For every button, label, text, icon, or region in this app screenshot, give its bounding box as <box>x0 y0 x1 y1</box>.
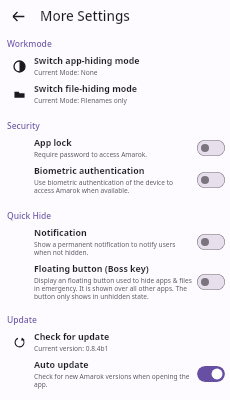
staticText: Use biometric authentication of the devi… <box>34 178 193 195</box>
button[interactable]: Biometric authentication <box>0 162 230 198</box>
staticText: Quick Hide <box>7 210 52 222</box>
button[interactable]: Off <box>197 234 225 250</box>
button[interactable]: Off <box>197 274 225 290</box>
staticText: Switch file-hiding mode <box>34 83 138 95</box>
staticText: Check for new Amarok versions when openi… <box>34 372 193 389</box>
button[interactable]: Back <box>6 4 30 28</box>
staticText: App lock <box>34 137 72 149</box>
staticText: Auto update <box>34 359 89 371</box>
button[interactable]: App lock <box>0 134 230 162</box>
button[interactable]: Notification <box>0 224 230 260</box>
button[interactable]: Switch app-hiding mode <box>0 52 230 80</box>
staticText: Require password to access Amarok. <box>34 150 148 159</box>
staticText: Current Mode: None <box>34 68 98 77</box>
staticText: Biometric authentication <box>34 165 145 177</box>
staticText: Show a permanent notification to notify … <box>34 240 193 257</box>
staticText: Switch app-hiding mode <box>34 55 140 67</box>
button[interactable]: On <box>197 366 225 382</box>
button[interactable]: Check for update <box>0 328 230 356</box>
staticText: Current Mode: Filenames only <box>34 96 127 105</box>
staticText: Security <box>7 120 40 132</box>
staticText: Floating button (Boss key) <box>34 263 149 275</box>
button[interactable]: Auto update <box>0 356 230 392</box>
staticText: Workmode <box>7 38 52 50</box>
staticText: More Settings <box>40 7 130 25</box>
staticText: Check for update <box>34 331 110 343</box>
staticText: Notification <box>34 227 87 239</box>
button[interactable]: Switch file-hiding mode <box>0 80 230 108</box>
staticText: Current version: 0.8.4b1 <box>34 344 109 353</box>
staticText: Update <box>7 314 37 326</box>
button[interactable]: Floating button (Boss key) <box>0 260 230 304</box>
button[interactable]: Off <box>197 140 225 156</box>
button[interactable]: Off <box>197 172 225 188</box>
staticText: Display an floating button used to hide … <box>34 276 193 301</box>
